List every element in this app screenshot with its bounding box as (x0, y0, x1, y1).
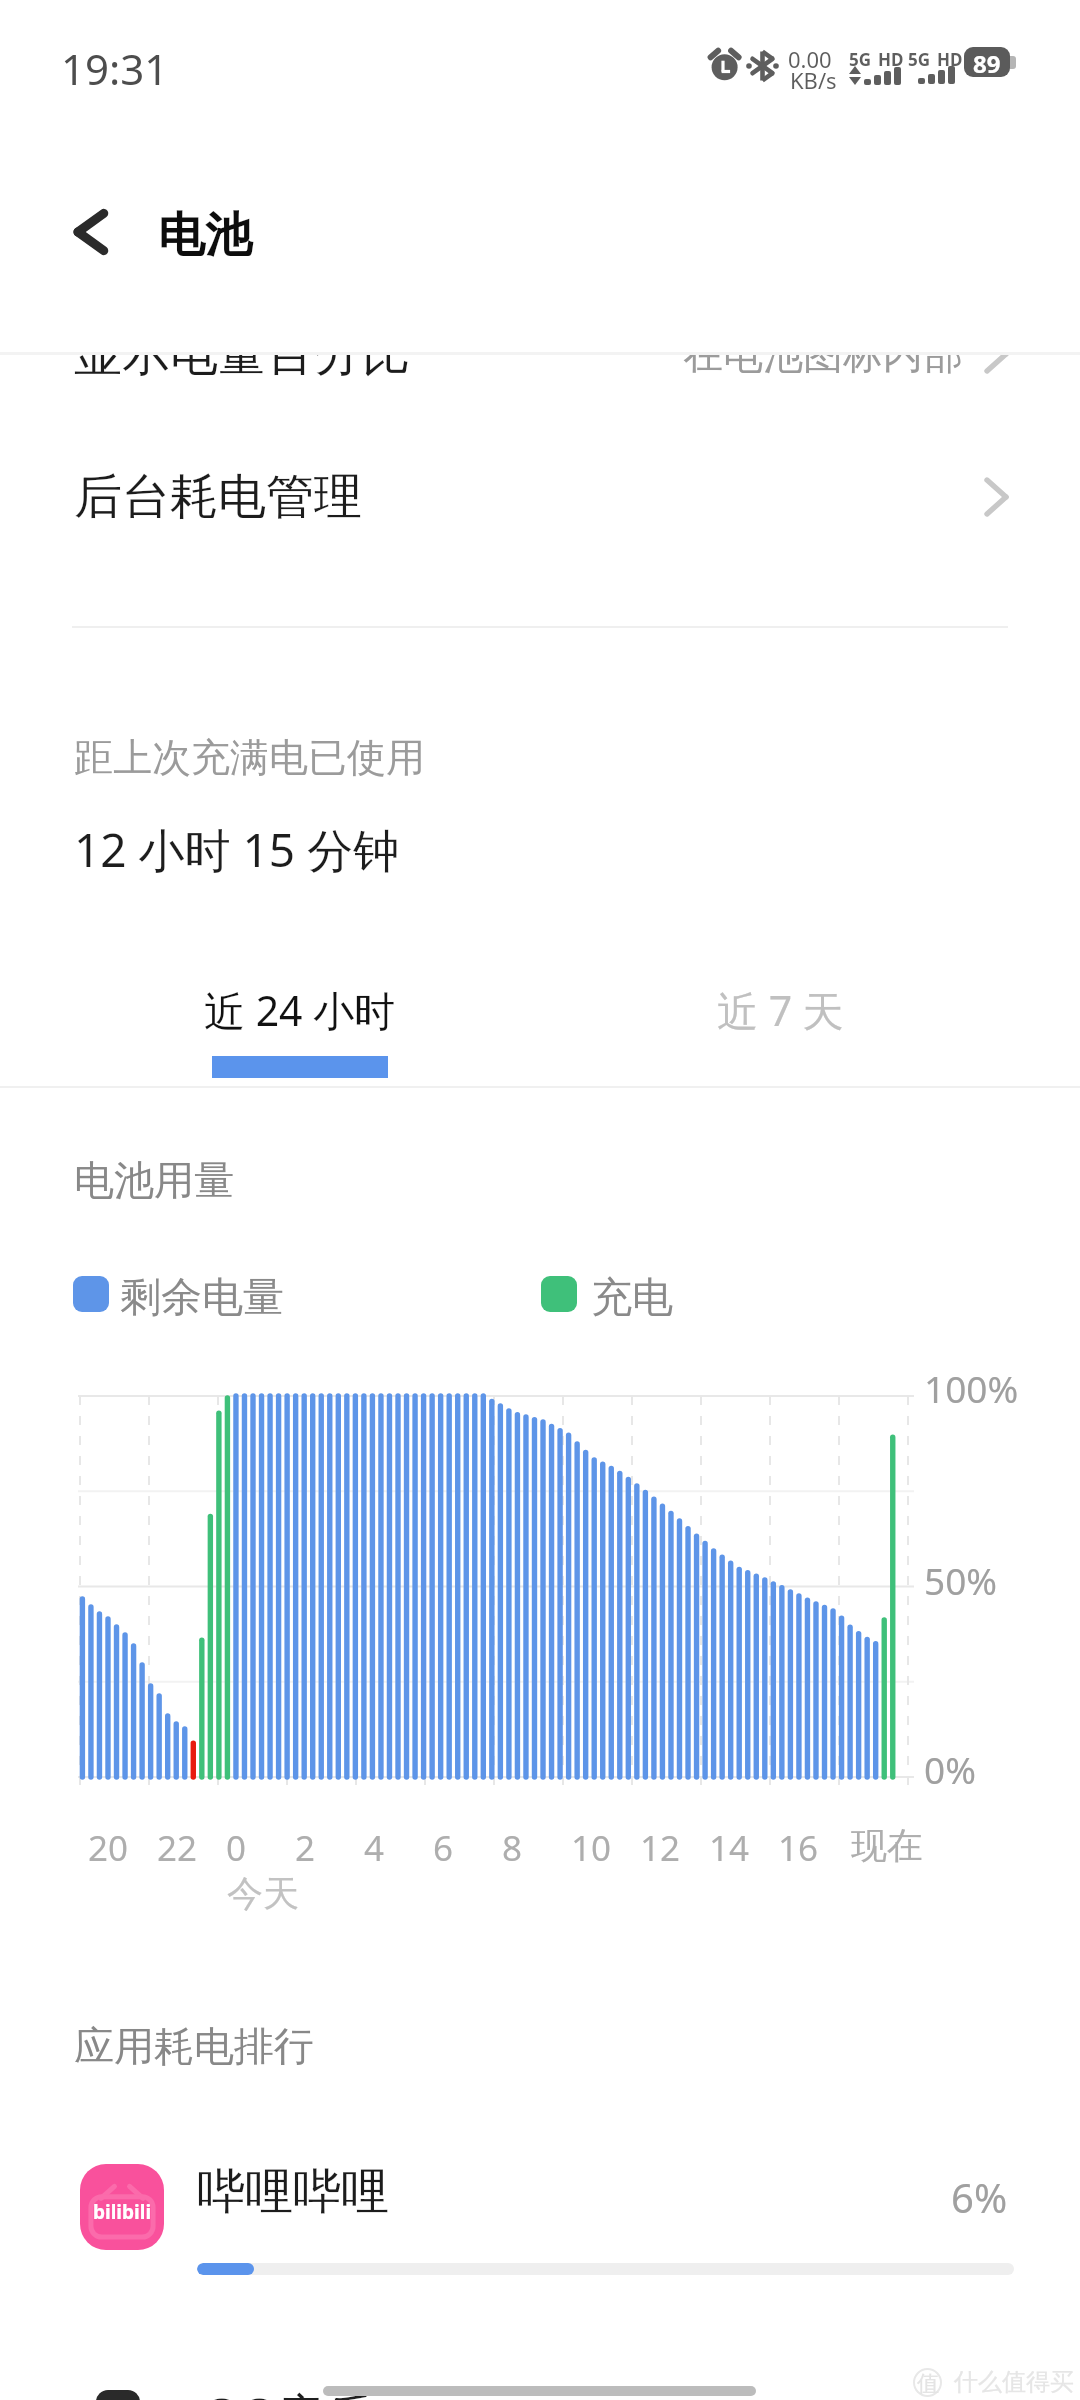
staticText: bilibili (93, 2199, 152, 2225)
staticText: 充电 (591, 1272, 673, 1324)
staticText: QQ音乐 (203, 2382, 374, 2400)
staticText: 22 (157, 1824, 198, 1872)
staticText: 100% (924, 1363, 1019, 1413)
staticText: 剩余电量 (120, 1272, 284, 1324)
staticText: 4 (364, 1824, 385, 1872)
staticText: 50% (924, 1555, 998, 1605)
staticText: 19:31 (61, 40, 169, 97)
staticText: 距上次充满电已使用 (74, 733, 425, 782)
staticText: HD (937, 48, 963, 71)
staticText: 0.00 (788, 44, 832, 74)
staticText: 6 (433, 1824, 454, 1872)
staticText: 后台耗电管理 (74, 467, 362, 527)
staticText: 14 (709, 1824, 750, 1872)
button[interactable]: 显示电量百分比 (0, 295, 1080, 413)
staticText: 89 (973, 47, 1001, 77)
staticText: KB/s (790, 65, 837, 95)
staticText: 现在 (851, 1823, 923, 1868)
staticText: 0 (226, 1824, 247, 1872)
staticText: 20 (88, 1824, 129, 1872)
staticText: 0% (924, 1744, 976, 1794)
staticText: 12 小时 15 分钟 (74, 818, 400, 881)
staticText: 电池 (158, 206, 252, 265)
staticText: HD (878, 48, 904, 71)
staticText: 今天 (227, 1871, 299, 1916)
staticText: 2 (295, 1824, 316, 1872)
staticText: 什么值得买 (954, 2367, 1074, 2397)
staticText: 显示电量百分比 (74, 324, 410, 384)
staticText: 8 (502, 1824, 523, 1872)
button[interactable]: 近 24 小时 (110, 982, 490, 1092)
staticText: 应用耗电排行 (74, 2021, 314, 2071)
staticText: 值 (917, 2370, 939, 2398)
staticText: 5G (849, 48, 872, 71)
button[interactable]: 近 7 天 (590, 982, 970, 1092)
staticText: 在电池图标内部 (683, 329, 963, 379)
staticText: 电池用量 (74, 1155, 234, 1205)
staticText: 近 7 天 (717, 982, 844, 1038)
button[interactable]: bilibili (0, 2140, 1080, 2290)
staticText: 16 (778, 1824, 819, 1872)
staticText: 10 (571, 1824, 612, 1872)
button[interactable]: 后台耗电管理 (0, 438, 1080, 556)
staticText: 哔哩哔哩 (197, 2162, 389, 2222)
staticText: 6% (951, 2170, 1008, 2224)
staticText: 5G (908, 48, 931, 71)
staticText: 12 (640, 1824, 681, 1872)
button[interactable]: Back (54, 194, 130, 270)
staticText: 近 24 小时 (204, 982, 396, 1038)
